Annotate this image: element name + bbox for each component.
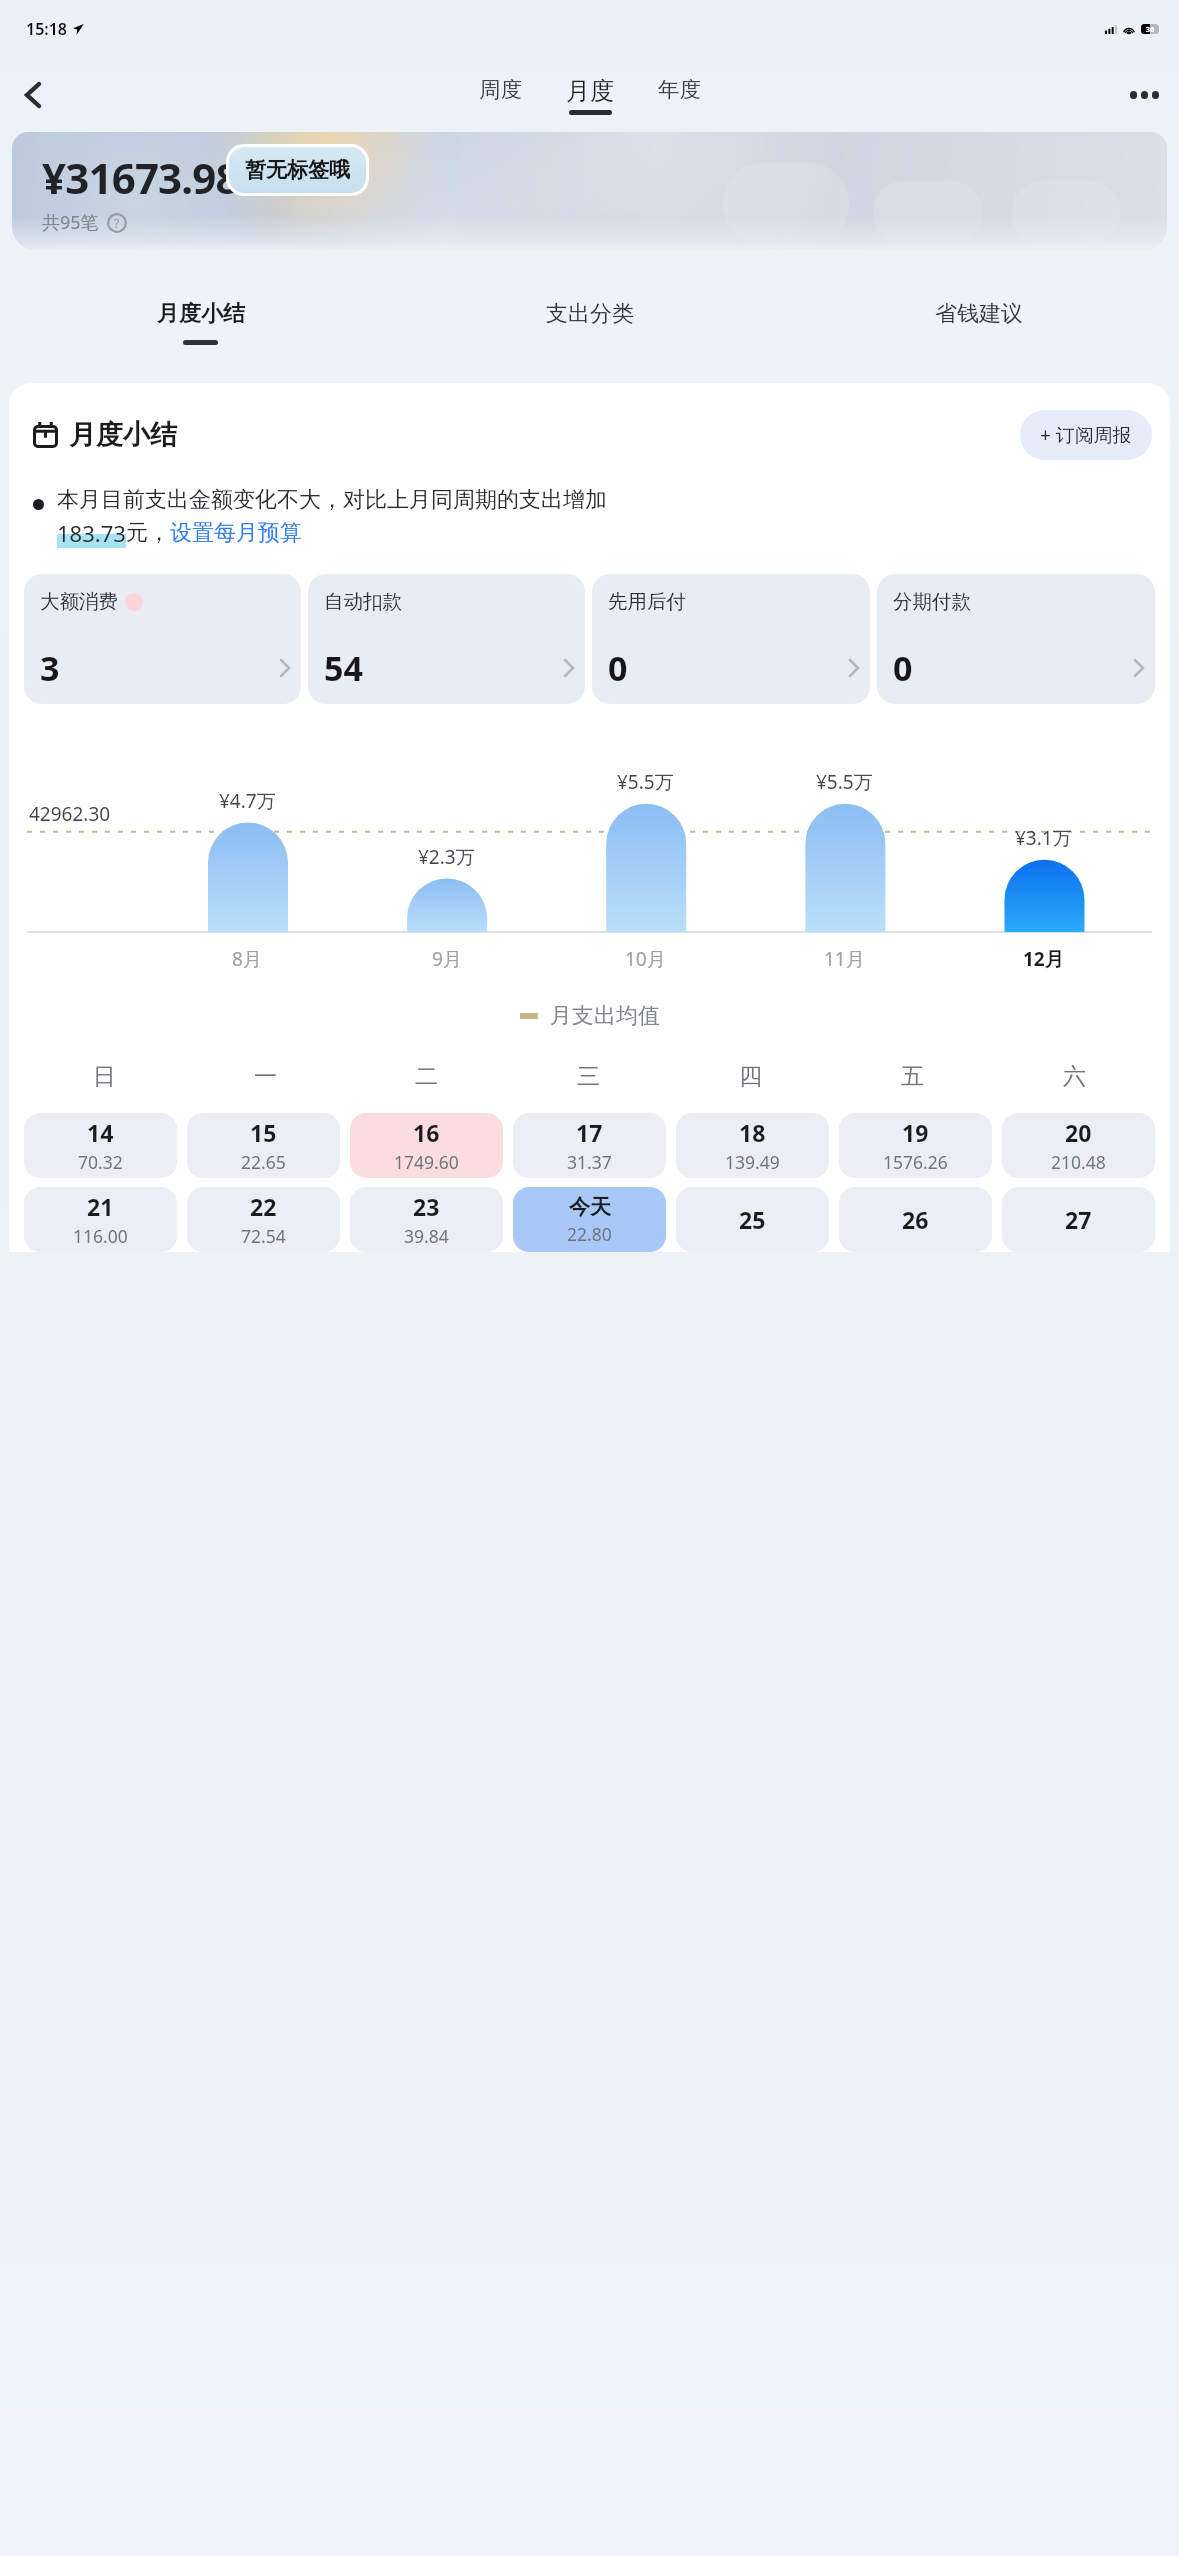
button[interactable]: 26 bbox=[839, 1187, 992, 1252]
button[interactable]: + 订阅周报 bbox=[1020, 410, 1152, 460]
staticText: 周度 bbox=[479, 76, 522, 103]
staticText: 22.80 bbox=[567, 1222, 612, 1246]
staticText: 10月 bbox=[625, 946, 666, 972]
button[interactable]: 周度 bbox=[474, 73, 527, 106]
staticText: 3 bbox=[40, 645, 60, 691]
staticText: 42962.30 bbox=[29, 801, 111, 827]
button[interactable]: 18 bbox=[676, 1113, 829, 1178]
staticText: 18 bbox=[739, 1117, 766, 1148]
staticText: 183.73 bbox=[57, 518, 126, 548]
staticText: 先用后付 bbox=[608, 589, 686, 614]
staticText: + 订阅周报 bbox=[1040, 422, 1132, 448]
staticText: 年度 bbox=[658, 76, 701, 103]
staticText: 39.84 bbox=[404, 1224, 449, 1248]
staticText: 支出分类 bbox=[546, 300, 634, 328]
staticText: 元， bbox=[126, 519, 170, 547]
button[interactable]: 15 bbox=[187, 1113, 340, 1178]
staticText: 12月 bbox=[1023, 946, 1064, 972]
staticText: 15 bbox=[250, 1117, 277, 1148]
staticText: 70.32 bbox=[78, 1150, 123, 1174]
staticText: 暂无标签哦 bbox=[245, 157, 350, 183]
staticText: 23 bbox=[413, 1191, 440, 1222]
button[interactable]: 自动扣款 bbox=[308, 574, 585, 704]
button[interactable]: 14 bbox=[24, 1113, 177, 1178]
staticText: 一 bbox=[254, 1062, 277, 1091]
button[interactable]: More options bbox=[1115, 66, 1173, 124]
staticText: 1576.26 bbox=[883, 1150, 948, 1174]
staticText: 三 bbox=[577, 1062, 600, 1091]
staticText: 0 bbox=[608, 645, 628, 691]
staticText: 27 bbox=[1065, 1204, 1092, 1235]
button[interactable]: 支出分类 bbox=[395, 298, 784, 347]
staticText: ¥5.5万 bbox=[617, 769, 674, 795]
button[interactable]: ¥31673.98 bbox=[12, 132, 1167, 250]
staticText: 54 bbox=[324, 645, 363, 691]
staticText: 17 bbox=[576, 1117, 603, 1148]
staticText: 25 bbox=[739, 1204, 766, 1235]
staticText: 二 bbox=[415, 1062, 438, 1091]
button[interactable]: 省钱建议 bbox=[784, 298, 1173, 347]
staticText: 大额消费 bbox=[40, 589, 118, 614]
staticText: 210.48 bbox=[1051, 1150, 1106, 1174]
staticText: 36 bbox=[1141, 24, 1159, 34]
button[interactable]: 25 bbox=[676, 1187, 829, 1252]
staticText: 月支出均值 bbox=[550, 1002, 660, 1030]
button[interactable]: 17 bbox=[513, 1113, 666, 1178]
button[interactable]: Help bbox=[107, 213, 127, 233]
button[interactable]: 21 bbox=[24, 1187, 177, 1252]
staticText: 11月 bbox=[824, 946, 865, 972]
button[interactable]: 27 bbox=[1002, 1187, 1155, 1252]
staticText: 本月目前支出金额变化不大，对比上月同周期的支出增加 bbox=[57, 486, 607, 514]
staticText: 116.00 bbox=[73, 1224, 128, 1248]
staticText: 15:18 bbox=[26, 18, 68, 40]
staticText: 月度小结 bbox=[69, 418, 177, 452]
button[interactable]: 分期付款 bbox=[877, 574, 1155, 704]
staticText: ¥5.5万 bbox=[816, 769, 873, 795]
button[interactable]: 23 bbox=[350, 1187, 503, 1252]
staticText: 14 bbox=[87, 1117, 114, 1148]
staticText: 72.54 bbox=[241, 1224, 286, 1248]
staticText: 20 bbox=[1065, 1117, 1092, 1148]
staticText: 今天 bbox=[569, 1194, 611, 1220]
staticText: 四 bbox=[739, 1062, 762, 1091]
staticText: ¥4.7万 bbox=[219, 788, 276, 814]
staticText: 26 bbox=[902, 1204, 929, 1235]
staticText: ? bbox=[114, 215, 120, 231]
staticText: 月度 bbox=[566, 76, 614, 106]
staticText: 9月 bbox=[432, 946, 462, 972]
button[interactable]: 今天 bbox=[513, 1187, 666, 1252]
button[interactable]: 年度 bbox=[653, 73, 706, 106]
staticText: 五 bbox=[901, 1062, 924, 1091]
button[interactable]: 暂无标签哦 bbox=[229, 147, 366, 193]
button[interactable]: 月度小结 bbox=[6, 298, 395, 347]
staticText: 22 bbox=[250, 1191, 277, 1222]
staticText: 0 bbox=[893, 645, 913, 691]
staticText: ¥3.1万 bbox=[1015, 825, 1072, 851]
staticText: 月度小结 bbox=[157, 300, 245, 328]
button[interactable]: 19 bbox=[839, 1113, 992, 1178]
button[interactable]: 设置每月预算 bbox=[170, 519, 302, 547]
staticText: 16 bbox=[413, 1117, 440, 1148]
button[interactable]: 先用后付 bbox=[592, 574, 870, 704]
staticText: 共95笔 bbox=[42, 210, 99, 235]
button[interactable]: 20 bbox=[1002, 1113, 1155, 1178]
staticText: 8月 bbox=[232, 946, 262, 972]
staticText: 六 bbox=[1063, 1062, 1086, 1091]
button[interactable]: 月度 bbox=[561, 73, 619, 118]
button[interactable]: 16 bbox=[350, 1113, 503, 1178]
staticText: 31.37 bbox=[567, 1150, 612, 1174]
button[interactable]: 大额消费 bbox=[24, 574, 301, 704]
staticText: 19 bbox=[902, 1117, 929, 1148]
staticText: 1749.60 bbox=[394, 1150, 459, 1174]
staticText: ¥31673.98 bbox=[42, 149, 239, 206]
button[interactable]: Back bbox=[4, 66, 62, 124]
staticText: 自动扣款 bbox=[324, 589, 402, 614]
staticText: 21 bbox=[87, 1191, 114, 1222]
staticText: 分期付款 bbox=[893, 589, 971, 614]
staticText: ¥2.3万 bbox=[418, 844, 475, 870]
staticText: 日 bbox=[93, 1062, 116, 1091]
staticText: 22.65 bbox=[241, 1150, 286, 1174]
button[interactable]: 22 bbox=[187, 1187, 340, 1252]
staticText: 省钱建议 bbox=[935, 300, 1023, 328]
staticText: 139.49 bbox=[725, 1150, 780, 1174]
